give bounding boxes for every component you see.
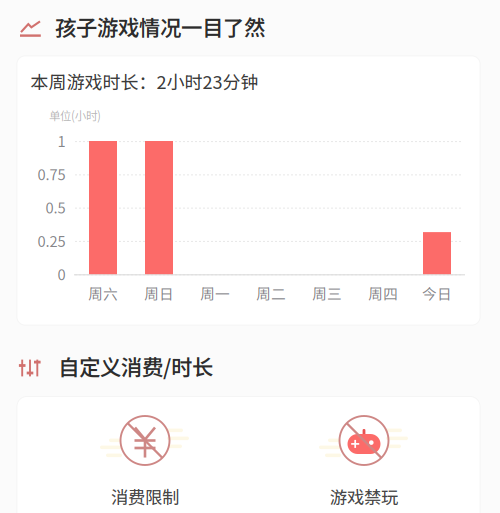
button[interactable]: 游戏禁玩 [269,400,459,513]
staticText: 周三 [312,282,342,304]
staticText: 消费限制 [111,484,179,509]
staticText: 周二 [256,282,286,304]
staticText: 单位(小时) [49,107,101,124]
staticText: 1 [57,130,65,151]
staticText: 周六 [88,282,118,304]
button[interactable]: 消费限制 [50,400,240,513]
staticText: 今日 [422,282,452,304]
staticText: 0.25 [37,230,65,251]
staticText: 0.5 [45,197,65,218]
staticText: 本周游戏时长：2小时23分钟 [30,68,258,94]
staticText: 孩子游戏情况一目了然 [55,11,265,42]
staticText: 游戏禁玩 [330,484,398,509]
staticText: 0 [57,263,65,284]
staticText: 周日 [144,282,174,304]
staticText: 自定义消费/时长 [58,350,213,381]
staticText: 周一 [200,282,230,304]
staticText: 0.75 [37,163,65,184]
staticText: 周四 [368,282,398,304]
